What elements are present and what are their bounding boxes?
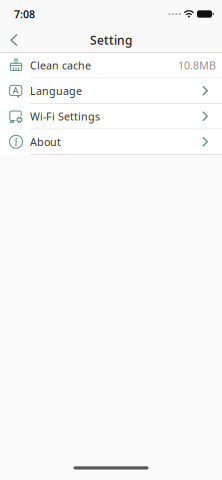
button[interactable]: About: [0, 129, 222, 155]
staticText: 7:08: [14, 7, 35, 21]
staticText: Wi-Fi Settings: [30, 109, 100, 123]
staticText: About: [30, 135, 61, 149]
button[interactable]: Wi-Fi Settings: [0, 104, 222, 129]
button[interactable]: Back: [0, 29, 18, 51]
staticText: 10.8MB: [178, 58, 216, 72]
staticText: Clean cache: [30, 58, 91, 72]
staticText: Setting: [90, 32, 132, 48]
button[interactable]: Clean cache: [0, 53, 222, 78]
button[interactable]: Language: [0, 78, 222, 104]
staticText: Language: [30, 84, 82, 98]
